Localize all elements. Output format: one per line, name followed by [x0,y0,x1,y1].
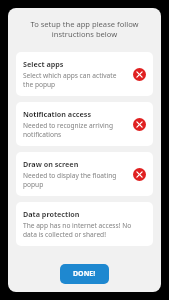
button[interactable]: Draw on screen [16,152,153,196]
staticText: Draw on screen [23,159,79,169]
staticText: Needed to display the floating popup [23,171,127,189]
button[interactable]: DONE! [60,264,109,284]
staticText: DONE! [73,269,96,279]
button[interactable]: Select apps not configured [133,68,146,81]
staticText: The app has no internet access! No data … [23,221,146,239]
staticText: To setup the app please follow instructi… [16,19,153,39]
button[interactable]: Notification access [16,102,153,146]
staticText: Select which apps can activate the popup [23,71,127,89]
button[interactable]: Data protection [16,202,153,246]
staticText: Needed to recognize arriving notificatio… [23,121,127,139]
button[interactable]: Select apps [16,52,153,96]
staticText: Notification access [23,109,92,119]
button[interactable]: Draw on screen not granted [133,168,146,181]
staticText: Select apps [23,59,64,69]
staticText: Data protection [23,209,80,219]
button[interactable]: Notification access not granted [133,118,146,131]
